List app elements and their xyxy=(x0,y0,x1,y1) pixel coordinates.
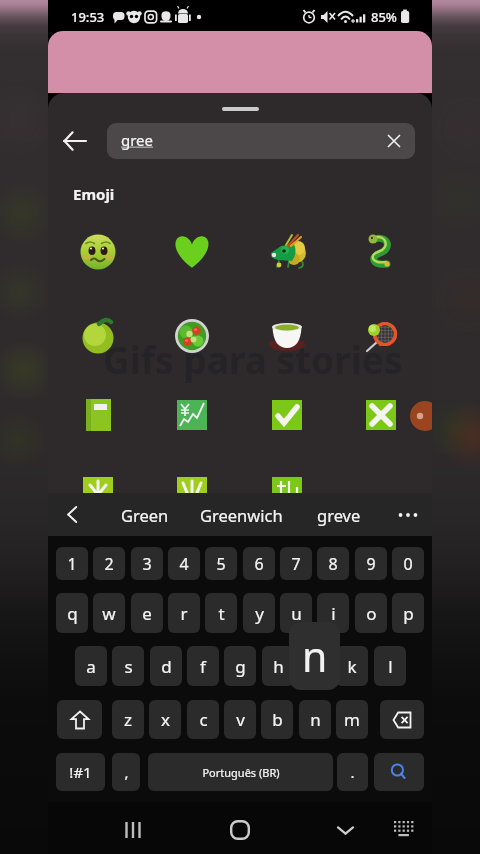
staticText: o xyxy=(366,602,377,625)
staticText: p xyxy=(403,602,414,625)
staticText: 2 xyxy=(104,553,114,575)
staticText: x xyxy=(161,708,170,731)
staticText: h xyxy=(273,655,284,678)
staticText: d xyxy=(161,655,172,678)
staticText: !#1 xyxy=(69,762,92,782)
button[interactable]: 5 xyxy=(205,547,237,580)
button[interactable]: a xyxy=(75,646,107,686)
button[interactable]: . xyxy=(337,753,368,791)
button[interactable]: Green xyxy=(121,493,169,536)
button[interactable]: n xyxy=(299,700,331,739)
staticText: b xyxy=(272,708,283,731)
button[interactable]: r xyxy=(168,593,200,633)
staticText: gree xyxy=(121,130,154,150)
staticText: 8 xyxy=(328,553,338,575)
staticText: n xyxy=(302,628,328,684)
button[interactable]: c xyxy=(187,700,219,739)
button[interactable]: w xyxy=(93,593,125,633)
button[interactable]: d xyxy=(150,646,182,686)
button[interactable]: b xyxy=(261,700,293,739)
staticText: m xyxy=(344,708,360,731)
button[interactable]: p xyxy=(392,593,424,633)
staticText: Emoji xyxy=(73,184,115,204)
staticText: . xyxy=(350,762,355,782)
button[interactable]: Search xyxy=(374,753,424,791)
button[interactable]: 9 xyxy=(355,547,387,580)
staticText: 0 xyxy=(403,553,413,575)
button[interactable]: gree xyxy=(107,123,415,159)
staticText: s xyxy=(124,655,133,678)
button[interactable]: z xyxy=(112,700,144,739)
button[interactable]: Backspace xyxy=(380,700,424,739)
staticText: e xyxy=(142,602,152,625)
staticText: k xyxy=(347,655,357,678)
button[interactable]: Recents xyxy=(105,804,161,854)
staticText: 3 xyxy=(142,553,152,575)
button[interactable]: l xyxy=(374,646,406,686)
staticText: 19:53 xyxy=(71,8,105,26)
button[interactable]: 8 xyxy=(317,547,349,580)
button[interactable]: i xyxy=(317,593,349,633)
button[interactable]: 1 xyxy=(56,547,88,580)
button[interactable]: Português (BR) xyxy=(148,753,333,791)
button[interactable]: More options xyxy=(388,493,428,536)
staticText: greve xyxy=(317,504,361,526)
button[interactable]: Switch keyboard xyxy=(380,804,426,854)
button[interactable]: Shift xyxy=(57,700,102,739)
staticText: Greenwich xyxy=(200,504,283,526)
button[interactable]: greve xyxy=(317,493,361,536)
staticText: 4 xyxy=(179,553,189,575)
button[interactable]: x xyxy=(149,700,181,739)
button[interactable]: 6 xyxy=(243,547,275,580)
button[interactable]: y xyxy=(243,593,275,633)
button[interactable]: 2 xyxy=(93,547,125,580)
staticText: Português (BR) xyxy=(202,765,280,780)
staticText: w xyxy=(102,602,116,625)
button[interactable]: 4 xyxy=(168,547,200,580)
button[interactable]: !#1 xyxy=(56,753,105,791)
button[interactable]: g xyxy=(224,646,256,686)
staticText: v xyxy=(236,708,245,731)
button[interactable]: 0 xyxy=(392,547,424,580)
button[interactable]: h xyxy=(262,646,294,686)
button[interactable]: 7 xyxy=(280,547,312,580)
staticText: r xyxy=(180,602,188,625)
staticText: 1 xyxy=(67,553,77,575)
staticText: 85% xyxy=(371,8,397,26)
staticText: u xyxy=(291,602,302,625)
button[interactable]: Clear xyxy=(379,126,409,156)
button[interactable]: 3 xyxy=(131,547,163,580)
staticText: z xyxy=(124,708,132,731)
staticText: t xyxy=(218,602,225,625)
button[interactable]: q xyxy=(56,593,88,633)
staticText: n xyxy=(310,708,321,731)
button[interactable]: Hide keyboard xyxy=(320,804,370,854)
staticText: 9 xyxy=(366,553,376,575)
staticText: y xyxy=(255,602,264,625)
button[interactable]: Back xyxy=(53,119,97,163)
button[interactable]: e xyxy=(131,593,163,633)
button[interactable]: k xyxy=(336,646,368,686)
button[interactable]: m xyxy=(336,700,368,739)
button[interactable]: Home xyxy=(212,804,268,854)
button[interactable]: , xyxy=(112,753,140,791)
button[interactable]: v xyxy=(224,700,256,739)
button[interactable]: Previous suggestions xyxy=(52,493,92,536)
button[interactable]: Greenwich xyxy=(200,493,283,536)
staticText: Green xyxy=(121,504,169,526)
staticText: , xyxy=(124,762,129,782)
staticText: c xyxy=(199,708,208,731)
staticText: a xyxy=(86,655,96,678)
staticText: g xyxy=(235,655,246,678)
button[interactable]: o xyxy=(355,593,387,633)
button[interactable]: f xyxy=(187,646,219,686)
staticText: Gifs para stories xyxy=(103,334,403,384)
staticText: f xyxy=(200,655,206,678)
button[interactable]: u xyxy=(280,593,312,633)
button[interactable]: t xyxy=(205,593,237,633)
button[interactable]: j xyxy=(299,646,331,686)
staticText: q xyxy=(67,602,78,625)
button[interactable]: s xyxy=(112,646,144,686)
staticText: l xyxy=(388,655,393,678)
